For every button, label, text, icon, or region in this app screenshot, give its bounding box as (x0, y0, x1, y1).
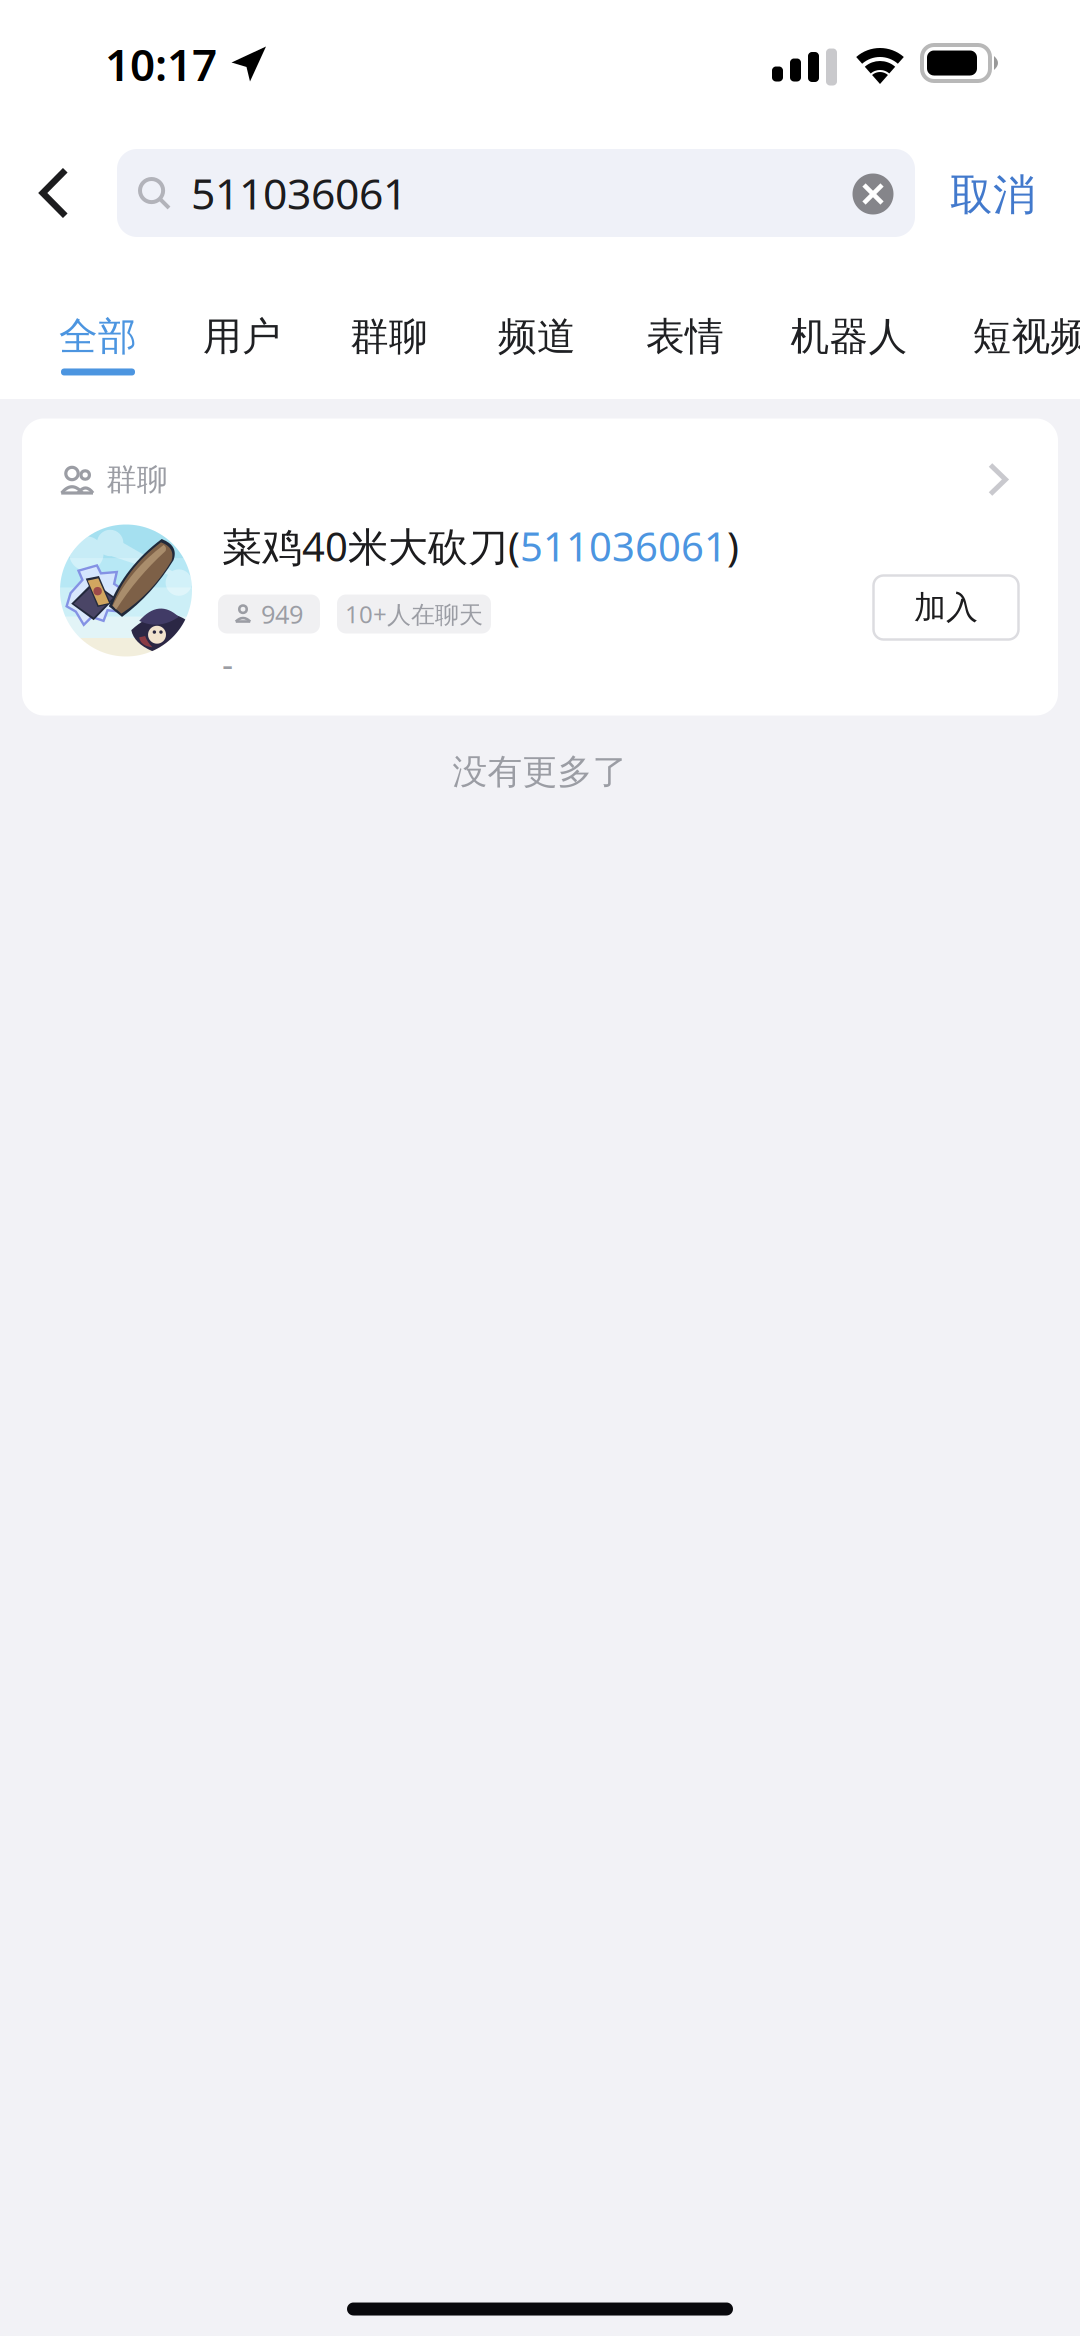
staticText: 用户 (203, 313, 281, 360)
staticText: 群聊 (106, 461, 168, 498)
button[interactable]: Back (6, 143, 102, 243)
button[interactable]: 机器人 (790, 280, 907, 400)
button[interactable]: 取消 (928, 147, 1058, 243)
staticText: 没有更多了 (452, 751, 627, 793)
button[interactable]: 全部 (59, 280, 137, 400)
staticText: 511036061 (191, 165, 407, 221)
button[interactable]: 群聊 (350, 280, 428, 400)
button[interactable]: 511036061 (117, 149, 915, 237)
staticText: 加入 (914, 588, 978, 627)
staticText: 机器人 (790, 313, 907, 360)
staticText: 表情 (646, 313, 724, 360)
staticText: 全部 (59, 313, 137, 360)
button[interactable]: 频道 (498, 280, 576, 400)
button[interactable]: Clear text (838, 159, 908, 229)
staticText: ) (727, 519, 739, 573)
staticText: - (222, 640, 233, 686)
button[interactable]: 用户 (203, 280, 281, 400)
staticText: 949 (261, 597, 303, 631)
staticText: 取消 (950, 169, 1036, 221)
staticText: 菜鸡40米大砍刀( (222, 519, 520, 573)
button[interactable]: 短视频 (972, 280, 1080, 400)
button[interactable]: 群聊 (22, 418, 1058, 540)
staticText: 短视频 (972, 313, 1080, 360)
staticText: 10+人在聊天 (345, 598, 483, 630)
staticText: 群聊 (350, 313, 428, 360)
staticText: 10:17 (105, 35, 217, 93)
staticText: 511036061 (520, 519, 727, 573)
staticText: 频道 (498, 313, 576, 360)
button[interactable]: 加入 (873, 575, 1018, 639)
button[interactable]: 表情 (646, 280, 724, 400)
